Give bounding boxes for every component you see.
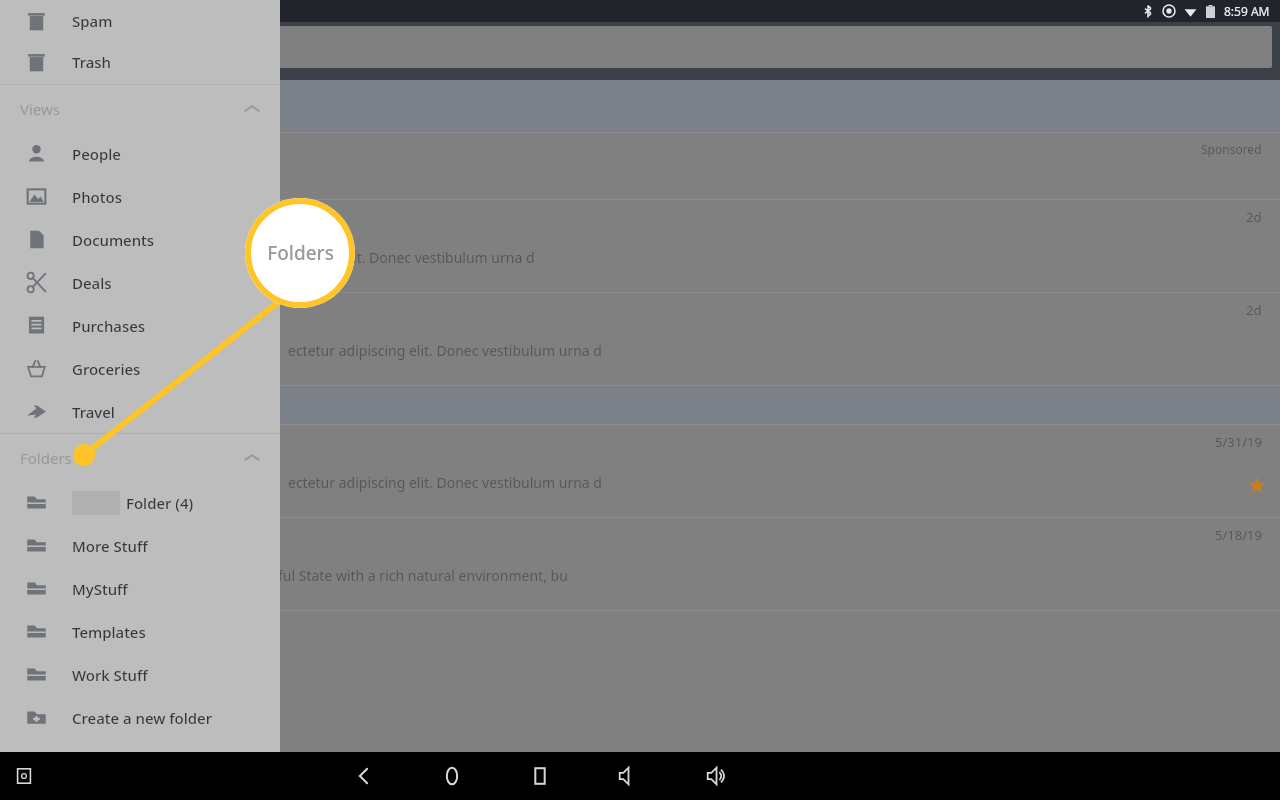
staticText: Folders [267, 240, 334, 266]
button[interactable]: Views [0, 85, 280, 132]
button[interactable]: 2d [0, 200, 1280, 292]
button[interactable]: Create a new folder [0, 696, 280, 739]
button[interactable]: Purchases [0, 304, 280, 347]
staticText: Views [20, 99, 61, 119]
button[interactable]: Groceries [0, 347, 280, 390]
button[interactable]: Trash [0, 40, 280, 84]
staticText: Documents [72, 230, 155, 250]
staticText: Folders [20, 448, 72, 468]
button[interactable]: Volume up [703, 763, 729, 789]
button[interactable]: Work Stuff [0, 653, 280, 696]
staticText: ectetur adipiscing elit. Donec vestibulu… [288, 473, 602, 492]
staticText: ectetur adipiscing elit. Donec vestibulu… [288, 341, 602, 360]
staticText: 5/31/19 [1215, 433, 1262, 451]
staticText: Folder (4) [126, 493, 194, 513]
staticText: Purchases [72, 316, 146, 336]
staticText: Sponsored [1201, 141, 1262, 157]
staticText: More Stuff [72, 536, 148, 556]
staticText: 2d [1246, 301, 1262, 319]
staticText: Create a new folder [72, 708, 213, 728]
button[interactable]: Spam [0, 2, 280, 40]
button[interactable]: Photos [0, 175, 280, 218]
staticText: Deals [72, 273, 112, 293]
button[interactable]: Folder (4) [0, 481, 280, 524]
staticText: Spam [72, 11, 113, 31]
staticText: Photos [72, 187, 122, 207]
staticText: Travel [72, 402, 115, 422]
staticText: Templates [72, 622, 146, 642]
button[interactable]: Screenshot [14, 766, 34, 786]
button[interactable]: Home [439, 763, 465, 789]
button[interactable]: Documents [0, 218, 280, 261]
button[interactable]: Folders [0, 434, 280, 481]
staticText: People [72, 144, 121, 164]
button[interactable]: Volume down [615, 763, 641, 789]
staticText: 5/18/19 [1215, 526, 1262, 544]
button[interactable] [8, 26, 1272, 68]
staticText: 2d [1246, 208, 1262, 226]
button[interactable]: More Stuff [0, 524, 280, 567]
button[interactable]: Travel [0, 390, 280, 433]
button[interactable]: Back [351, 763, 377, 789]
staticText: iscing elit. Donec vestibulum urna d [300, 248, 535, 267]
staticText: Groceries [72, 359, 141, 379]
button[interactable]: MyStuff [0, 567, 280, 610]
button[interactable]: Sponsored [0, 133, 1280, 199]
staticText: ful State with a rich natural environmen… [278, 566, 568, 585]
button[interactable]: Deals [0, 261, 280, 304]
button[interactable]: People [0, 132, 280, 175]
button[interactable]: Recents [527, 763, 553, 789]
staticText: MyStuff [72, 579, 128, 599]
button[interactable]: 5/31/19 [0, 425, 1280, 517]
button[interactable]: 2d [0, 293, 1280, 385]
button[interactable]: Templates [0, 610, 280, 653]
staticText: Trash [72, 52, 112, 72]
staticText: Work Stuff [72, 665, 148, 685]
button[interactable]: 5/18/19 [0, 518, 1280, 610]
staticText: 8:59 AM [1224, 3, 1270, 19]
